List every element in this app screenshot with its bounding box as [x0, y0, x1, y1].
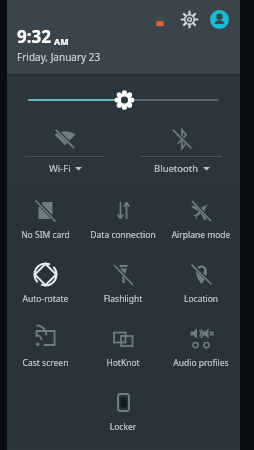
staticText: Flashlight [84, 293, 162, 305]
button[interactable]: Brightness [7, 75, 240, 121]
button[interactable]: Audio profiles [162, 315, 240, 379]
staticText: Auto-rotate [7, 293, 84, 305]
button[interactable]: Location [162, 251, 240, 315]
button[interactable]: Bluetooth [123, 121, 240, 183]
button[interactable]: Auto-rotate [7, 251, 84, 315]
staticText: Location [162, 293, 240, 305]
button[interactable]: No SIM card [7, 187, 84, 251]
staticText: AM [54, 35, 69, 47]
button[interactable]: HotKnot [84, 315, 162, 379]
staticText: Bluetooth [154, 162, 199, 175]
staticText: 9:32 [17, 25, 51, 48]
staticText: Airplane mode [162, 229, 240, 241]
button[interactable]: Airplane mode [162, 187, 240, 251]
button[interactable]: Settings [178, 8, 200, 30]
staticText: Wi-Fi [49, 162, 71, 175]
button[interactable]: Cast screen [7, 315, 84, 379]
staticText: Locker [84, 421, 162, 433]
staticText: Cast screen [7, 357, 84, 369]
button[interactable]: User [208, 8, 230, 30]
staticText: No SIM card [7, 229, 84, 241]
button[interactable]: Data connection [84, 187, 162, 251]
button[interactable]: Battery [150, 9, 170, 29]
staticText: HotKnot [84, 357, 162, 369]
button[interactable]: Locker [84, 379, 162, 443]
button[interactable]: Wi-Fi [7, 121, 123, 183]
button[interactable]: Flashlight [84, 251, 162, 315]
staticText: Audio profiles [162, 357, 240, 369]
staticText: Friday, January 23 [17, 50, 101, 64]
staticText: Data connection [84, 229, 162, 241]
